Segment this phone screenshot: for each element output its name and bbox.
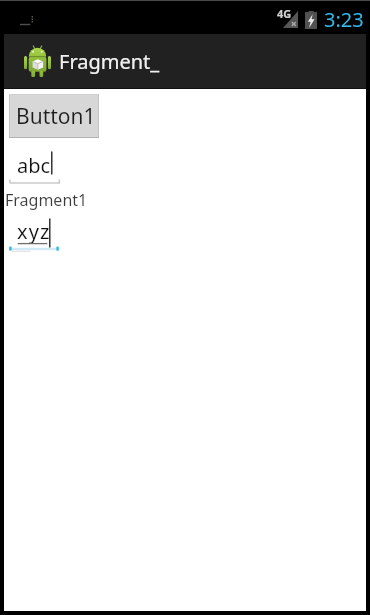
button[interactable]: App icon	[17, 38, 177, 85]
other: App icon	[24, 46, 51, 77]
button[interactable]: abc	[9, 142, 62, 189]
staticText: abc	[17, 152, 51, 179]
button[interactable]: Button1	[9, 94, 99, 138]
staticText: Button1	[16, 102, 96, 131]
button[interactable]: xyz	[9, 208, 60, 255]
staticText: 3:23	[324, 6, 364, 33]
staticText: xyz	[17, 218, 51, 245]
staticText: Fragment_	[59, 48, 160, 75]
staticText: Fragment1	[5, 189, 88, 211]
staticText: 4G	[277, 6, 292, 21]
